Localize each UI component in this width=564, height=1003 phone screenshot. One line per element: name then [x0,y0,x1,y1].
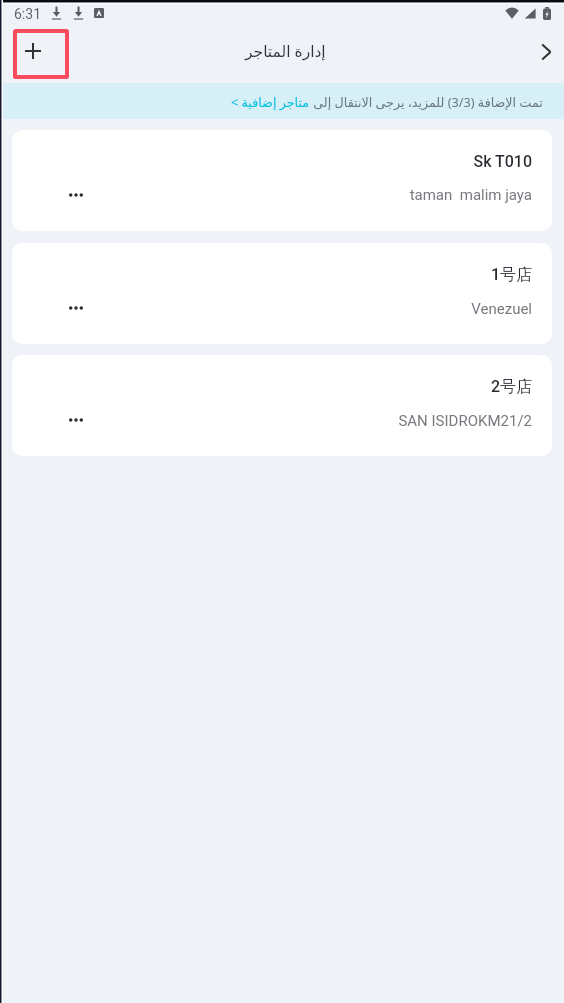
staticText: 6:31 [14,6,41,22]
button[interactable]: More [524,30,564,74]
staticText: Sk T010 [473,152,532,171]
button[interactable]: 1号店 [12,243,552,344]
button[interactable]: < متاجر إضافية [231,93,310,110]
staticText: taman malim jaya [409,186,532,204]
staticText: 2号店 [490,377,532,397]
button[interactable]: Add store [17,33,65,75]
button[interactable]: More options [63,184,89,206]
button[interactable]: 2号店 [12,355,552,456]
staticText: إدارة المتاجر [245,40,326,61]
button[interactable]: Sk T010 [12,130,552,231]
button[interactable]: More options [63,409,89,431]
button[interactable]: More options [63,297,89,319]
staticText: 1号店 [490,265,532,285]
staticText: Venezuel [471,300,532,318]
staticText: SAN ISIDROKM21/2 [398,412,532,430]
staticText: تمت الإضافة (3/3) للمزيد، يرجى الانتقال … [310,93,543,110]
